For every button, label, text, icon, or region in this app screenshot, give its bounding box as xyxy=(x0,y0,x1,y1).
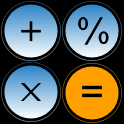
button[interactable]: Equals xyxy=(61,62,123,124)
button[interactable]: Plus xyxy=(0,0,62,62)
button[interactable]: Multiply xyxy=(0,61,62,123)
button[interactable]: Percent xyxy=(61,0,123,62)
